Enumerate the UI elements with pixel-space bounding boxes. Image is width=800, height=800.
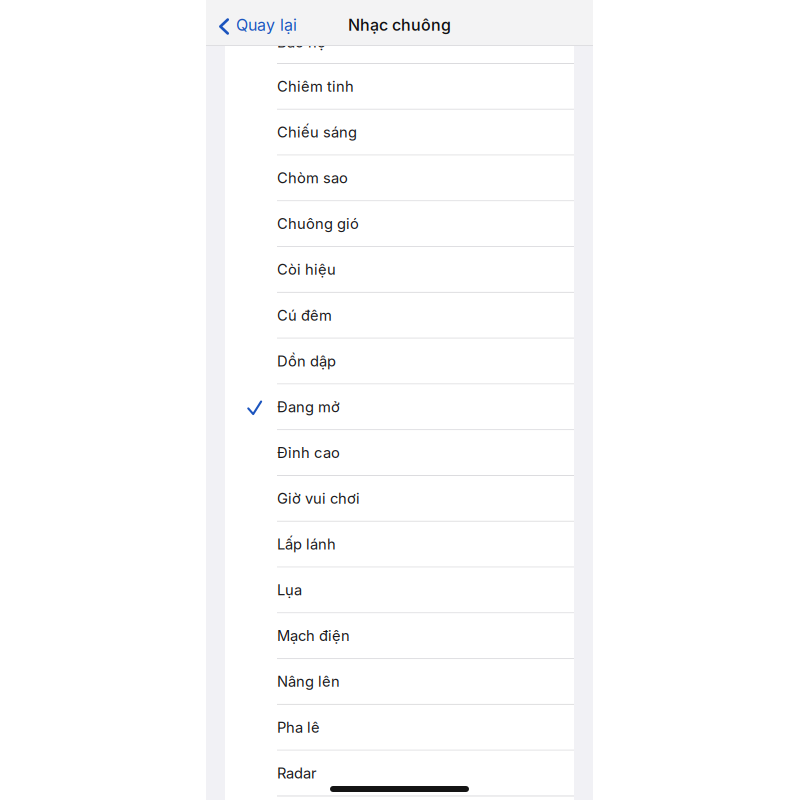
button[interactable]: Cú đêm bbox=[225, 293, 574, 339]
staticText: Chòm sao bbox=[277, 169, 348, 187]
staticText: Dồn dập bbox=[277, 352, 336, 370]
button[interactable]: Còi hiệu bbox=[225, 247, 574, 293]
staticText: Pha lê bbox=[277, 718, 320, 736]
button[interactable]: Nâng lên bbox=[225, 659, 574, 705]
staticText: Chiêm tinh bbox=[277, 77, 354, 95]
staticText: Lấp lánh bbox=[277, 535, 336, 553]
staticText: Mạch điện bbox=[277, 627, 350, 645]
staticText: Đang mở bbox=[277, 398, 340, 416]
staticText: Chuông gió bbox=[277, 215, 359, 233]
staticText: Bảo hộ bbox=[277, 33, 326, 51]
button[interactable]: Dồn dập bbox=[225, 339, 574, 384]
staticText: Còi hiệu bbox=[277, 261, 336, 278]
staticText: Cú đêm bbox=[277, 306, 332, 324]
button[interactable]: Lấp lánh bbox=[225, 522, 574, 568]
button[interactable]: Lụa bbox=[225, 568, 574, 613]
staticText: Radar bbox=[277, 764, 317, 782]
button[interactable]: Giờ vui chơi bbox=[225, 476, 574, 522]
staticText: Quay lại bbox=[236, 15, 297, 35]
button[interactable]: Radar bbox=[225, 751, 574, 796]
button[interactable]: Chòm sao bbox=[225, 156, 574, 201]
button[interactable]: Chiếu sáng bbox=[225, 110, 574, 156]
staticText: Nâng lên bbox=[277, 673, 340, 690]
button[interactable]: Đỉnh cao bbox=[225, 430, 574, 476]
button[interactable]: Đang mở bbox=[225, 384, 574, 430]
button[interactable]: Chiêm tinh bbox=[225, 64, 574, 110]
staticText: Đỉnh cao bbox=[277, 444, 340, 461]
button[interactable]: Pha lê bbox=[225, 705, 574, 751]
staticText: Nhạc chuông bbox=[348, 15, 451, 35]
button[interactable]: Mạch điện bbox=[225, 613, 574, 659]
button[interactable]: Chuông gió bbox=[225, 201, 574, 247]
staticText: Giờ vui chơi bbox=[277, 489, 360, 507]
staticText: Lụa bbox=[277, 581, 302, 599]
button[interactable]: Bảo hộ bbox=[225, 0, 574, 64]
staticText: Chiếu sáng bbox=[277, 123, 357, 141]
button[interactable]: Quay lại bbox=[219, 5, 304, 45]
